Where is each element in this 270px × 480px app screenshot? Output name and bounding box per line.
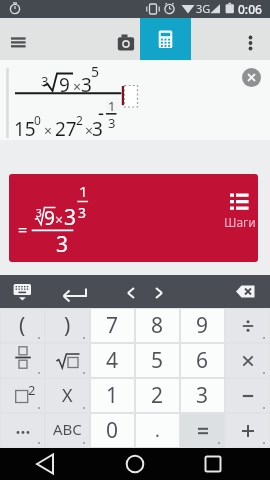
button[interactable] — [226, 275, 270, 308]
staticText: 0 — [34, 112, 41, 128]
button[interactable]: 7 — [91, 309, 134, 342]
staticText: × — [44, 121, 53, 140]
button[interactable] — [226, 414, 269, 447]
button[interactable] — [0, 275, 47, 308]
button[interactable]: 1 — [91, 379, 134, 412]
button[interactable]: 0 — [91, 414, 134, 447]
button[interactable] — [226, 309, 269, 342]
staticText: 1 — [108, 97, 116, 115]
button[interactable] — [236, 18, 270, 60]
staticText: ) — [64, 311, 71, 340]
button[interactable] — [142, 275, 184, 308]
button[interactable] — [0, 18, 40, 60]
staticText: 2 — [28, 381, 36, 399]
staticText: 5 — [91, 62, 100, 81]
staticText: 3 — [56, 230, 69, 259]
button[interactable] — [181, 414, 224, 447]
staticText: × — [73, 77, 82, 96]
button[interactable] — [113, 448, 157, 480]
button[interactable] — [191, 448, 235, 480]
staticText: Шаги — [224, 214, 256, 230]
button[interactable]: 5 — [136, 344, 179, 377]
button[interactable]: ) — [46, 309, 89, 342]
button[interactable]: 8 — [136, 309, 179, 342]
staticText: × — [55, 210, 64, 229]
staticText: 3 — [41, 72, 49, 90]
button[interactable] — [47, 275, 99, 308]
staticText: . — [155, 418, 160, 443]
staticText: 3 — [78, 203, 87, 222]
button[interactable] — [226, 344, 269, 377]
staticText: 3 — [92, 116, 103, 142]
staticText: 5 — [151, 346, 164, 375]
button[interactable]: = — [9, 174, 258, 262]
staticText: ( — [19, 311, 26, 340]
staticText: 2 — [151, 381, 164, 410]
staticText: 3 — [81, 72, 92, 98]
staticText: ABC — [53, 419, 82, 439]
staticText: 2 — [76, 112, 83, 128]
button[interactable]: 3 — [181, 379, 224, 412]
staticText: 9 — [59, 72, 70, 98]
button[interactable] — [242, 68, 261, 87]
button[interactable]: 2 — [136, 379, 179, 412]
staticText: × — [85, 121, 94, 140]
button[interactable] — [226, 379, 269, 412]
staticText: 3 — [36, 206, 42, 220]
button[interactable]: 9 — [181, 309, 224, 342]
staticText: 4 — [106, 346, 119, 375]
staticText: 9 — [44, 205, 55, 231]
button[interactable]: 4 — [91, 344, 134, 377]
staticText: 9 — [196, 311, 209, 340]
staticText: 6 — [196, 346, 209, 375]
button[interactable] — [110, 275, 152, 308]
button[interactable]: ABC — [46, 414, 89, 447]
button[interactable] — [1, 344, 44, 377]
staticText: 1 — [106, 381, 119, 410]
staticText: 3G — [196, 1, 211, 16]
button[interactable] — [46, 344, 89, 377]
button[interactable]: . — [136, 414, 179, 447]
staticText: X — [62, 383, 73, 408]
staticText: 8 — [151, 311, 164, 340]
staticText: 3 — [64, 203, 77, 232]
button[interactable]: 2 — [1, 379, 44, 412]
button[interactable]: X — [46, 379, 89, 412]
button[interactable] — [1, 414, 44, 447]
button[interactable]: 6 — [181, 344, 224, 377]
staticText: 7 — [106, 311, 119, 340]
button[interactable]: Шаги — [221, 174, 258, 262]
staticText: 3 — [196, 381, 209, 410]
button[interactable] — [108, 18, 144, 60]
staticText: 3 — [108, 114, 116, 132]
staticText: 0:06 — [238, 1, 262, 17]
staticText: = — [18, 219, 28, 241]
staticText: 1 — [79, 181, 88, 201]
button[interactable]: ( — [1, 309, 44, 342]
staticText: 27 — [55, 116, 77, 142]
button[interactable] — [23, 448, 67, 480]
staticText: 15 — [14, 116, 36, 142]
staticText: 0 — [106, 416, 119, 445]
button[interactable] — [140, 18, 191, 60]
